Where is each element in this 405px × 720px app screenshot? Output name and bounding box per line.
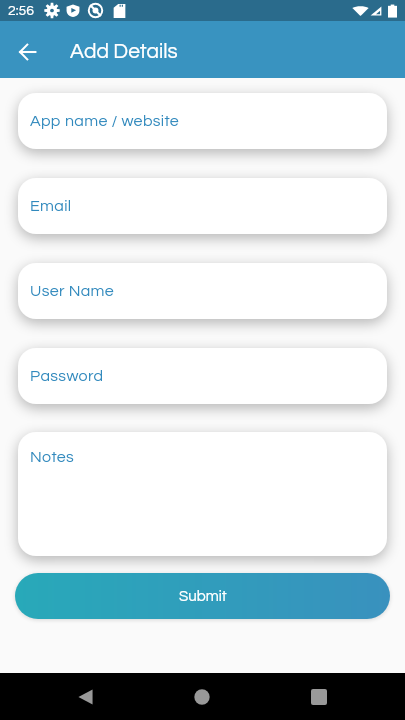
button[interactable]: Notes xyxy=(18,432,387,556)
button[interactable]: User Name xyxy=(18,263,387,319)
button[interactable]: Recents xyxy=(299,677,339,717)
button[interactable]: Home xyxy=(182,677,222,717)
staticText: App name / website xyxy=(30,113,180,129)
button[interactable]: Back xyxy=(11,35,45,69)
staticText: Add Details xyxy=(70,41,178,63)
staticText: Email xyxy=(30,198,72,214)
button[interactable]: App name / website xyxy=(18,93,387,149)
staticText: User Name xyxy=(30,283,115,299)
button[interactable]: Email xyxy=(18,178,387,234)
staticText: Password xyxy=(30,368,104,384)
staticText: Submit xyxy=(179,589,227,604)
button[interactable]: Back xyxy=(65,677,105,717)
button[interactable]: Submit xyxy=(15,573,390,619)
staticText: 2:56 xyxy=(8,4,34,18)
button[interactable]: Password xyxy=(18,348,387,404)
staticText: Notes xyxy=(30,449,75,465)
